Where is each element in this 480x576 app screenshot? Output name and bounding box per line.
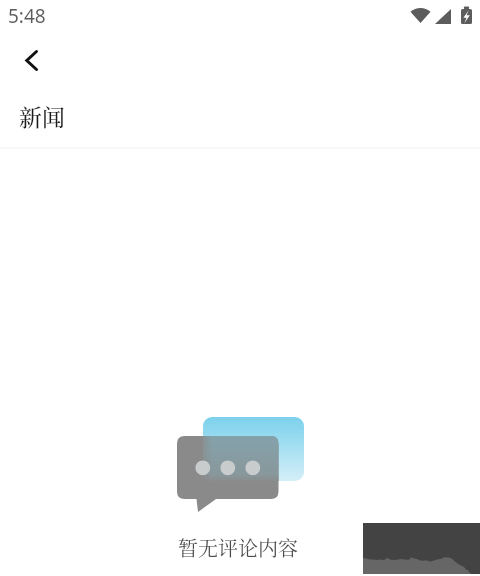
staticText: 暂无评论内容 [178, 533, 298, 562]
button[interactable]: Back [9, 40, 53, 80]
button[interactable]: Floating video window [363, 523, 480, 574]
staticText: 5:48 [8, 3, 46, 29]
staticText: 新闻 [19, 100, 65, 133]
